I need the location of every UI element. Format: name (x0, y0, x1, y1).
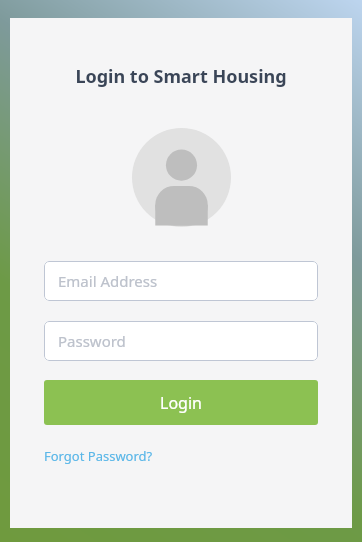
staticText: Password (58, 331, 126, 351)
staticText: Email Address (58, 271, 158, 291)
button[interactable]: Email Address (44, 261, 318, 301)
staticText: Login to Smart Housing (75, 64, 287, 89)
button[interactable]: Login (44, 380, 318, 425)
button[interactable]: Forgot Password? (44, 444, 153, 468)
button[interactable]: Password (44, 321, 318, 361)
staticText: Forgot Password? (44, 447, 153, 465)
staticText: Login (160, 392, 202, 414)
